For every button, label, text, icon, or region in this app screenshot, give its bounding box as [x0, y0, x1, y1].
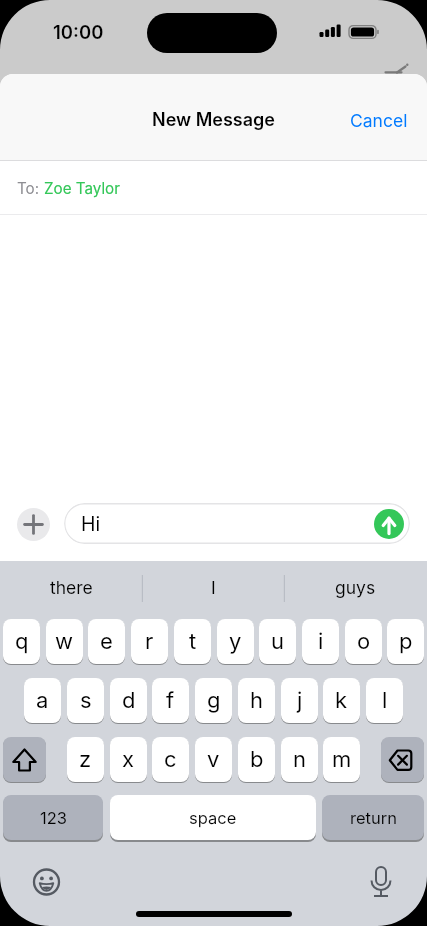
- button[interactable]: guys: [284, 561, 426, 614]
- staticText: o: [357, 628, 371, 655]
- button[interactable]: g: [195, 678, 232, 723]
- button[interactable]: o: [345, 619, 382, 664]
- staticText: m: [332, 746, 352, 773]
- button[interactable]: return: [322, 795, 424, 840]
- button[interactable]: To:: [0, 161, 427, 214]
- button[interactable]: i: [302, 619, 339, 664]
- staticText: s: [80, 687, 92, 714]
- button[interactable]: a: [24, 678, 61, 723]
- staticText: k: [335, 687, 348, 714]
- staticText: n: [293, 746, 306, 773]
- button[interactable]: [3, 737, 46, 782]
- button[interactable]: [26, 862, 67, 903]
- staticText: a: [36, 687, 49, 714]
- staticText: i: [318, 628, 324, 655]
- button[interactable]: r: [131, 619, 168, 664]
- staticText: I: [211, 577, 216, 598]
- staticText: Zoe Taylor: [44, 179, 120, 197]
- staticText: Cancel: [350, 110, 408, 131]
- staticText: w: [55, 628, 74, 655]
- button[interactable]: space: [110, 795, 316, 840]
- staticText: d: [122, 687, 136, 714]
- staticText: Hi: [81, 512, 101, 536]
- button[interactable]: m: [323, 737, 360, 782]
- button[interactable]: s: [67, 678, 104, 723]
- button[interactable]: h: [238, 678, 275, 723]
- staticText: p: [399, 628, 413, 655]
- staticText: v: [207, 746, 220, 773]
- button[interactable]: d: [110, 678, 147, 723]
- button[interactable]: b: [238, 737, 275, 782]
- button[interactable]: Hi: [64, 503, 410, 544]
- staticText: e: [100, 628, 113, 655]
- button[interactable]: z: [67, 737, 104, 782]
- button[interactable]: q: [3, 619, 40, 664]
- button[interactable]: l: [366, 678, 403, 723]
- button[interactable]: Cancel: [350, 110, 408, 131]
- button[interactable]: n: [281, 737, 318, 782]
- staticText: 123: [40, 808, 67, 828]
- button[interactable]: w: [46, 619, 83, 664]
- staticText: q: [15, 628, 29, 655]
- staticText: t: [189, 628, 197, 655]
- button[interactable]: 123: [3, 795, 103, 840]
- button[interactable]: f: [152, 678, 189, 723]
- button[interactable]: there: [0, 561, 142, 614]
- staticText: To:: [17, 179, 40, 197]
- button[interactable]: c: [152, 737, 189, 782]
- button[interactable]: e: [88, 619, 125, 664]
- button[interactable]: t: [174, 619, 211, 664]
- button[interactable]: x: [110, 737, 147, 782]
- staticText: c: [164, 746, 177, 773]
- staticText: f: [166, 687, 175, 714]
- staticText: z: [79, 746, 92, 773]
- staticText: u: [271, 628, 285, 655]
- button[interactable]: v: [195, 737, 232, 782]
- button[interactable]: k: [323, 678, 360, 723]
- button[interactable]: [17, 508, 50, 541]
- button[interactable]: p: [387, 619, 424, 664]
- staticText: 10:00: [53, 21, 104, 43]
- staticText: space: [189, 808, 237, 828]
- staticText: New Message: [152, 109, 275, 131]
- staticText: there: [50, 577, 93, 598]
- staticText: b: [250, 746, 264, 773]
- staticText: h: [250, 687, 264, 714]
- staticText: y: [229, 628, 242, 655]
- button[interactable]: y: [217, 619, 254, 664]
- button[interactable]: j: [281, 678, 318, 723]
- staticText: l: [382, 687, 388, 714]
- button[interactable]: [374, 509, 404, 539]
- staticText: x: [122, 746, 135, 773]
- button[interactable]: u: [259, 619, 296, 664]
- staticText: g: [207, 687, 221, 714]
- staticText: r: [145, 628, 154, 655]
- staticText: return: [350, 808, 397, 828]
- button[interactable]: [360, 862, 401, 903]
- staticText: j: [297, 687, 303, 714]
- button[interactable]: I: [142, 561, 284, 614]
- staticText: guys: [335, 577, 376, 598]
- button[interactable]: [381, 737, 424, 782]
